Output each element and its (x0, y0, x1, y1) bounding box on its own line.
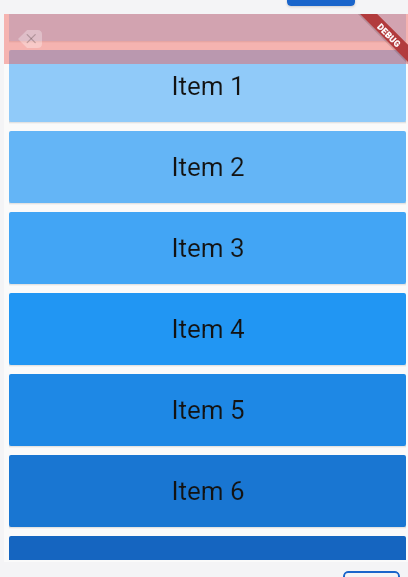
button[interactable]: Item 6 (9, 455, 406, 527)
button[interactable]: Item 4 (9, 293, 406, 365)
staticText: Item 5 (171, 395, 245, 425)
button[interactable]: Item 5 (9, 374, 406, 446)
staticText: Item 2 (171, 152, 245, 182)
button[interactable]: Secondary action (343, 571, 400, 577)
button[interactable]: Item 1 (9, 50, 406, 122)
staticText: Item 1 (171, 71, 245, 101)
button[interactable]: Item 3 (9, 212, 406, 284)
staticText: Item 3 (171, 233, 245, 263)
button[interactable] (9, 14, 406, 41)
button[interactable]: Action (287, 0, 355, 6)
staticText: Item 6 (171, 476, 245, 506)
button[interactable]: Item 2 (9, 131, 406, 203)
staticText: Item 4 (171, 314, 245, 344)
button[interactable]: Close (18, 30, 42, 48)
